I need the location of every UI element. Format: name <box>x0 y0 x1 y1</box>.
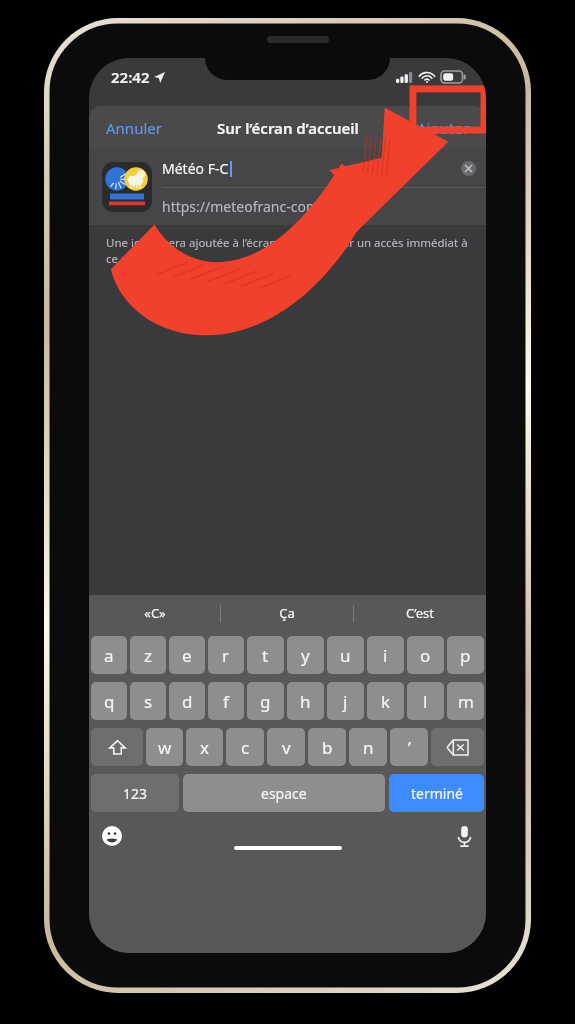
staticText: Météo F-C <box>162 159 229 178</box>
staticText: Une icône sera ajoutée à l’écran d’accue… <box>106 235 469 266</box>
staticText: terminé <box>411 784 463 803</box>
button[interactable]: t <box>247 636 284 674</box>
staticText: e <box>182 644 192 667</box>
button[interactable]: e <box>169 636 205 674</box>
button[interactable]: n <box>349 728 387 766</box>
button[interactable]: r <box>208 636 244 674</box>
button[interactable]: C’est <box>354 595 486 631</box>
staticText: k <box>381 690 391 713</box>
button[interactable]: Ça <box>221 595 353 631</box>
staticText: Ajouter <box>417 118 469 138</box>
staticText: d <box>182 690 193 713</box>
button[interactable]: u <box>327 636 364 674</box>
button[interactable]: ’ <box>390 728 428 766</box>
button[interactable]: espace <box>183 774 385 812</box>
staticText: i <box>383 644 388 667</box>
button[interactable]: v <box>267 728 305 766</box>
staticText: m <box>458 690 474 713</box>
staticText: 22:42 <box>111 67 150 87</box>
staticText: g <box>260 690 271 713</box>
staticText: Ça <box>279 604 295 622</box>
button[interactable]: s <box>130 682 166 720</box>
staticText: v <box>282 736 291 759</box>
staticText: n <box>363 736 374 759</box>
staticText: s <box>144 690 153 713</box>
button[interactable]: c <box>226 728 264 766</box>
staticText: c <box>241 736 250 759</box>
button[interactable]: z <box>130 636 166 674</box>
button[interactable]: Majuscule <box>91 728 143 766</box>
button[interactable]: Ajouter <box>400 106 486 149</box>
staticText: ’ <box>408 736 411 759</box>
staticText: Annuler <box>106 118 162 138</box>
staticText: https://meteofranc-comtoise.fr <box>162 197 366 216</box>
button[interactable]: k <box>367 682 404 720</box>
button[interactable]: b <box>308 728 346 766</box>
button[interactable]: w <box>146 728 183 766</box>
button[interactable]: p <box>447 636 484 674</box>
button[interactable]: a <box>91 636 127 674</box>
button[interactable]: Annuler <box>89 106 179 149</box>
staticText: h <box>300 690 311 713</box>
button[interactable]: Supprimer <box>431 728 484 766</box>
staticText: a <box>104 644 114 667</box>
staticText: r <box>222 644 230 667</box>
button[interactable]: m <box>447 682 484 720</box>
staticText: j <box>343 690 348 713</box>
staticText: z <box>144 644 152 667</box>
button[interactable]: o <box>407 636 444 674</box>
button[interactable]: f <box>208 682 244 720</box>
staticText: q <box>104 690 115 713</box>
staticText: espace <box>261 784 307 803</box>
staticText: «C» <box>144 604 166 622</box>
staticText: 123 <box>123 784 148 803</box>
button[interactable]: x <box>186 728 223 766</box>
button[interactable]: Dictée <box>457 826 472 847</box>
staticText: b <box>322 736 333 759</box>
staticText: u <box>340 644 351 667</box>
staticText: f <box>223 690 229 713</box>
staticText: l <box>423 690 428 713</box>
button[interactable]: 123 <box>91 774 179 812</box>
button[interactable]: h <box>287 682 324 720</box>
button[interactable]: terminé <box>389 774 484 812</box>
staticText: t <box>262 644 269 667</box>
staticText: Sur l’écran d’accueil <box>217 118 359 138</box>
button[interactable]: Emoji <box>102 826 122 846</box>
button[interactable]: d <box>169 682 205 720</box>
staticText: C’est <box>406 604 434 622</box>
staticText: y <box>301 644 310 667</box>
button[interactable]: Effacer <box>461 161 476 176</box>
staticText: x <box>200 736 209 759</box>
button[interactable]: j <box>327 682 364 720</box>
button[interactable]: q <box>91 682 127 720</box>
button[interactable]: g <box>247 682 284 720</box>
staticText: p <box>460 644 471 667</box>
button[interactable]: l <box>407 682 444 720</box>
button[interactable]: «C» <box>89 595 220 631</box>
button[interactable]: i <box>367 636 404 674</box>
button[interactable]: y <box>287 636 324 674</box>
staticText: w <box>158 736 172 759</box>
staticText: o <box>420 644 431 667</box>
